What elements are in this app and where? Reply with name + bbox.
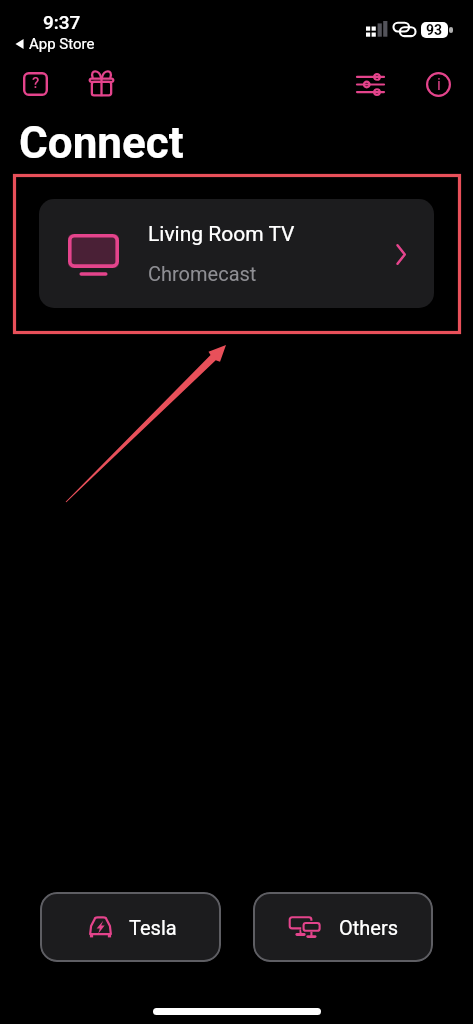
button[interactable]: Others [253,892,433,962]
staticText: Others [339,916,399,939]
button[interactable]: App Store [15,35,95,53]
button[interactable]: Gift [88,69,115,97]
button[interactable]: Settings [357,75,384,94]
staticText: ? [32,74,40,92]
staticText: 93 [426,22,443,38]
staticText: Chromecast [148,262,257,285]
staticText: Connect [19,117,184,169]
staticText: Tesla [129,916,177,939]
button[interactable]: Living Room TV [39,199,434,308]
staticText: i [437,75,441,94]
button[interactable]: Tesla [40,892,221,962]
button[interactable]: Help [23,72,48,96]
staticText: Living Room TV [148,222,295,247]
button[interactable]: Info [426,72,451,97]
staticText: App Store [29,35,95,53]
staticText: 9:37 [43,11,81,33]
